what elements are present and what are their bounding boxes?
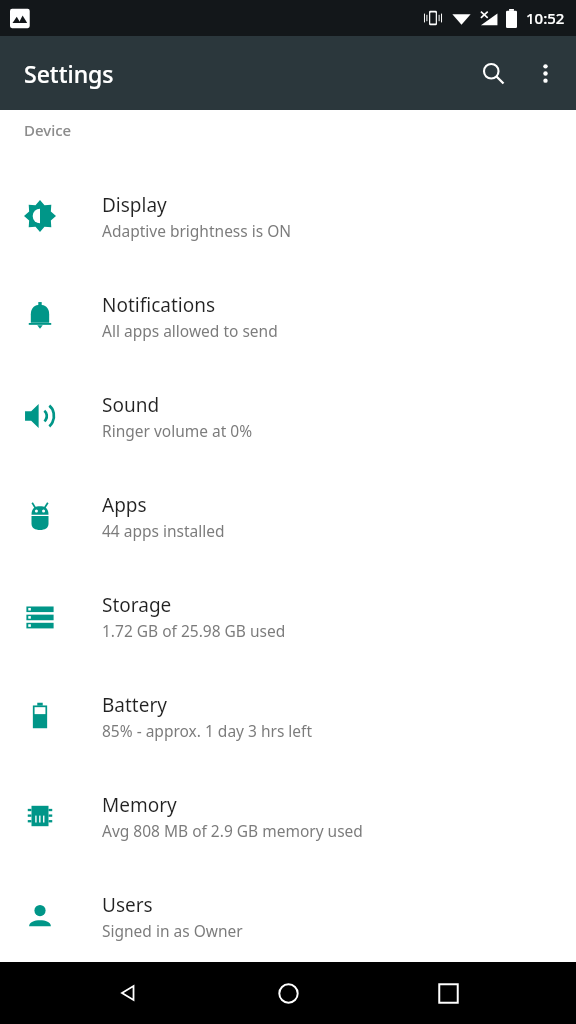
staticText: Battery [102,692,167,718]
button[interactable]: More options [521,49,569,97]
staticText: Display [102,192,167,218]
staticText: Memory [102,792,177,818]
button[interactable]: Home [258,963,318,1023]
staticText: Storage [102,592,172,618]
staticText: Users [102,892,153,918]
staticText: Device [24,120,72,140]
button[interactable]: Battery [0,666,576,766]
button[interactable]: Recent apps [418,963,478,1023]
staticText: Signed in as Owner [102,920,243,941]
staticText: 10:52 [526,8,565,28]
button[interactable]: Memory [0,766,576,866]
staticText: Ringer volume at 0% [102,420,253,441]
staticText: Avg 808 MB of 2.9 GB memory used [102,820,363,841]
button[interactable]: Sound [0,366,576,466]
button[interactable]: Users [0,866,576,966]
button[interactable]: Display [0,166,576,266]
staticText: Notifications [102,292,216,318]
button[interactable]: Search [465,45,521,101]
staticText: Apps [102,492,147,518]
staticText: Settings [24,58,114,89]
staticText: 1.72 GB of 25.98 GB used [102,620,286,641]
staticText: 44 apps installed [102,520,225,541]
button[interactable]: Back [98,963,158,1023]
staticText: 85% - approx. 1 day 3 hrs left [102,720,313,741]
button[interactable]: Apps [0,466,576,566]
button[interactable]: Notifications [0,266,576,366]
staticText: Adaptive brightness is ON [102,220,292,241]
staticText: All apps allowed to send [102,320,278,341]
staticText: Sound [102,392,160,418]
button[interactable]: Storage [0,566,576,666]
